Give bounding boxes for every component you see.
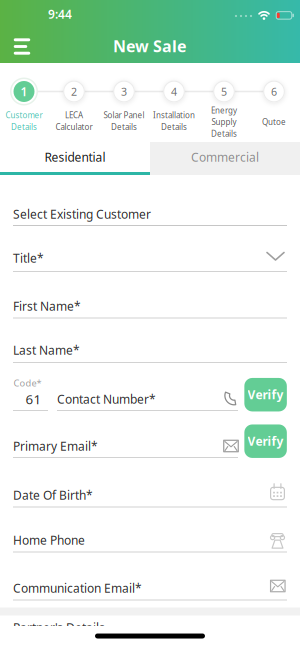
staticText: First Name* bbox=[13, 298, 81, 314]
staticText: Communication Email* bbox=[13, 580, 142, 596]
staticText: LECA bbox=[65, 110, 83, 120]
button[interactable]: 3 bbox=[110, 77, 138, 105]
button[interactable]: First Name* bbox=[13, 293, 287, 319]
staticText: 3 bbox=[121, 84, 127, 99]
button[interactable]: Title* bbox=[13, 245, 287, 271]
staticText: Contact Number* bbox=[57, 391, 156, 407]
button[interactable]: 61 bbox=[16, 388, 51, 410]
button[interactable]: Verify bbox=[244, 424, 287, 458]
button[interactable]: Commercial bbox=[150, 142, 300, 175]
staticText: Select Existing Customer bbox=[13, 206, 151, 222]
staticText: Primary Email* bbox=[13, 438, 98, 454]
staticText: Date Of Birth* bbox=[13, 487, 93, 503]
button[interactable]: 1 bbox=[10, 77, 38, 105]
button[interactable]: Select Existing Customer bbox=[13, 201, 287, 227]
staticText: 6 bbox=[271, 84, 277, 99]
button[interactable]: 4 bbox=[160, 77, 188, 105]
staticText: 1 bbox=[20, 83, 27, 99]
staticText: Details bbox=[11, 121, 37, 132]
button[interactable]: Verify bbox=[244, 378, 287, 411]
button[interactable]: 5 bbox=[210, 77, 238, 105]
staticText: 4 bbox=[171, 84, 177, 99]
button[interactable] bbox=[10, 35, 34, 57]
button[interactable]: Residential bbox=[0, 142, 150, 175]
staticText: Verify bbox=[248, 433, 284, 449]
button[interactable]: Home Phone bbox=[13, 527, 287, 553]
staticText: Customer bbox=[5, 110, 42, 120]
staticText: Home Phone bbox=[13, 532, 85, 548]
staticText: Calculator bbox=[55, 121, 92, 132]
staticText: Code* bbox=[13, 377, 41, 389]
staticText: Details bbox=[211, 128, 237, 139]
staticText: Energy bbox=[211, 105, 237, 116]
staticText: Solar Panel bbox=[103, 110, 144, 120]
staticText: New Sale bbox=[113, 35, 187, 57]
button[interactable]: Primary Email* bbox=[13, 433, 287, 459]
staticText: Last Name* bbox=[13, 342, 80, 358]
button[interactable]: Date Of Birth* bbox=[13, 482, 287, 508]
staticText: 61 bbox=[25, 390, 41, 408]
staticText: Details bbox=[161, 121, 187, 132]
button[interactable]: Contact Number* bbox=[57, 386, 238, 412]
button[interactable]: Communication Email* bbox=[13, 575, 287, 601]
button[interactable]: Last Name* bbox=[13, 337, 287, 363]
button[interactable]: 2 bbox=[60, 77, 88, 105]
staticText: 2 bbox=[71, 84, 77, 99]
staticText: Verify bbox=[248, 387, 284, 403]
staticText: Residential bbox=[44, 149, 105, 165]
button[interactable]: 6 bbox=[260, 77, 288, 105]
staticText: Details bbox=[111, 121, 137, 132]
staticText: Qutoe bbox=[262, 117, 286, 127]
staticText: Commercial bbox=[191, 149, 259, 165]
staticText: Title* bbox=[13, 250, 44, 266]
staticText: Partner's Details bbox=[13, 619, 105, 635]
staticText: Installation bbox=[153, 110, 195, 120]
staticText: 5 bbox=[221, 84, 227, 99]
staticText: Supply bbox=[211, 117, 236, 127]
staticText: 9:44 bbox=[48, 6, 72, 22]
